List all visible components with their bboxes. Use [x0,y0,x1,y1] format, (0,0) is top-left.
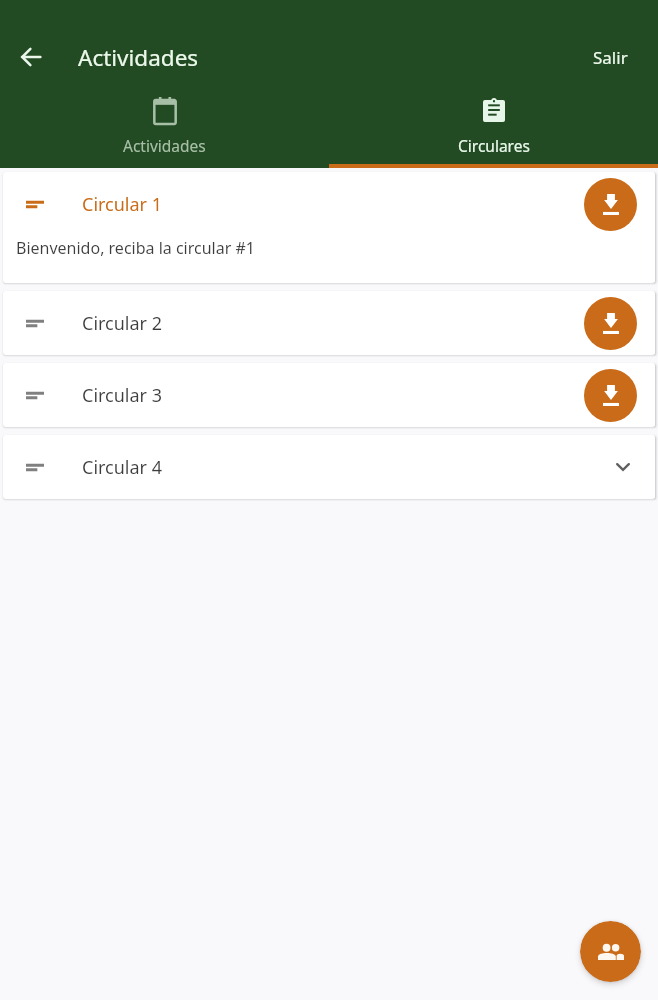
button[interactable]: Descargar [584,297,637,350]
button[interactable]: Circular 4 [3,435,655,499]
staticText: Actividades [78,42,199,73]
button[interactable]: Descargar [584,178,637,231]
staticText: Circular 1 [82,192,163,217]
button[interactable]: Circular 3 [3,363,655,427]
staticText: Circular 2 [82,311,163,336]
button[interactable]: Expandir [601,445,645,489]
staticText: Circular 3 [82,383,163,408]
button[interactable]: Actividades [0,88,329,168]
staticText: Salir [593,46,628,69]
button[interactable]: Circulares [329,88,658,168]
staticText: Circulares [458,135,530,156]
button[interactable]: Circular 1 [3,172,655,283]
button[interactable]: Descargar [584,369,637,422]
button[interactable]: Salir [585,38,636,77]
staticText: Circular 4 [82,455,163,480]
button[interactable]: Atras [8,34,53,79]
button[interactable]: Circular 2 [3,291,655,355]
button[interactable]: Contactos [580,921,641,982]
staticText: Bienvenido, reciba la circular #1 [16,237,255,259]
staticText: Actividades [123,135,206,156]
